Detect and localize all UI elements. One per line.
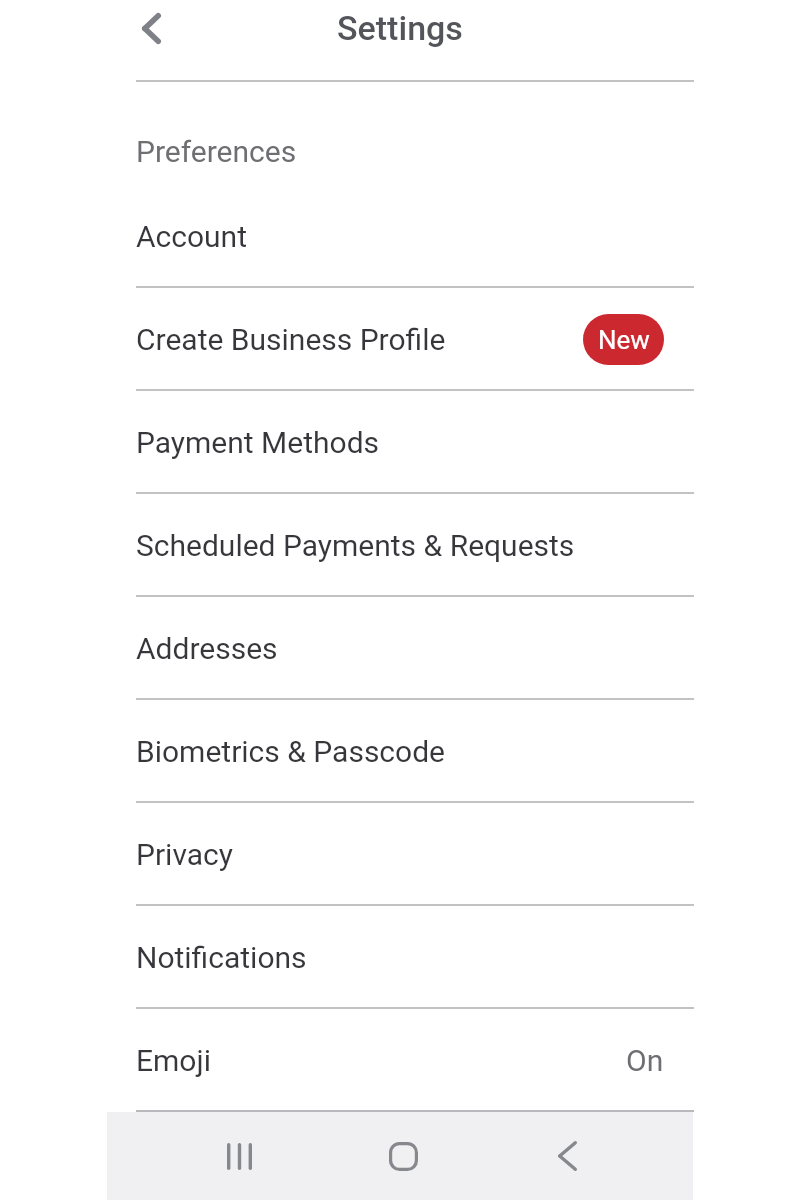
staticText: Privacy bbox=[136, 837, 233, 872]
button[interactable]: Payment Methods bbox=[0, 391, 800, 494]
button[interactable]: Notifications bbox=[0, 906, 800, 1009]
button[interactable]: Biometrics & Passcode bbox=[0, 700, 800, 803]
button[interactable]: Create Business Profile bbox=[0, 288, 800, 391]
staticText: Create Business Profile bbox=[136, 322, 446, 357]
staticText: Addresses bbox=[136, 631, 278, 666]
button[interactable]: Scheduled Payments & Requests bbox=[0, 494, 800, 597]
button[interactable]: Emoji bbox=[0, 1009, 800, 1112]
staticText: New bbox=[598, 325, 650, 355]
button[interactable]: Addresses bbox=[0, 597, 800, 700]
staticText: Biometrics & Passcode bbox=[136, 734, 446, 769]
staticText: Emoji bbox=[136, 1043, 211, 1078]
staticText: On bbox=[626, 1043, 664, 1078]
staticText: Preferences bbox=[136, 134, 297, 169]
button[interactable]: Privacy bbox=[0, 803, 800, 906]
staticText: Payment Methods bbox=[136, 425, 380, 460]
staticText: Scheduled Payments & Requests bbox=[136, 528, 575, 563]
staticText: Account bbox=[136, 219, 248, 254]
staticText: Notifications bbox=[136, 940, 307, 975]
button[interactable]: Account bbox=[0, 185, 800, 288]
button[interactable]: Navigate up bbox=[123, 5, 179, 51]
button[interactable]: Home bbox=[373, 1112, 433, 1200]
button[interactable]: Recent apps bbox=[209, 1112, 269, 1200]
button[interactable]: Back bbox=[537, 1112, 597, 1200]
staticText: Settings bbox=[337, 8, 463, 48]
